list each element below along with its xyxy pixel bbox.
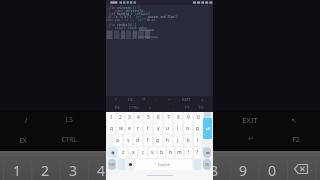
button[interactable]: 7 bbox=[164, 112, 172, 123]
button[interactable] bbox=[204, 135, 211, 146]
button[interactable]: l bbox=[194, 135, 202, 146]
button[interactable]: 4 bbox=[85, 161, 117, 178]
button[interactable]: LS bbox=[45, 115, 93, 125]
button[interactable]: Emoji bbox=[127, 159, 133, 170]
staticText: ? bbox=[196, 149, 199, 156]
button[interactable]: a bbox=[113, 135, 122, 146]
button[interactable]: , bbox=[173, 105, 175, 111]
staticText: a bbox=[116, 137, 119, 144]
staticText: r bbox=[137, 125, 140, 132]
button[interactable]: 3 bbox=[57, 161, 89, 178]
button[interactable]: x bbox=[129, 147, 137, 158]
button[interactable]: Backspace bbox=[204, 112, 211, 123]
staticText: to it bbox=[145, 18, 156, 22]
staticText: ?123 bbox=[109, 163, 115, 167]
button[interactable]: 9 bbox=[184, 112, 192, 123]
button[interactable]: Space bbox=[135, 159, 192, 170]
button[interactable]: CTRL. bbox=[46, 134, 94, 144]
button[interactable]: Enter bbox=[203, 159, 211, 170]
staticText: = bbox=[149, 105, 152, 111]
staticText: inflate() bbox=[135, 12, 151, 16]
button[interactable]: 1 bbox=[1, 161, 33, 178]
button[interactable]: ! bbox=[185, 147, 192, 158]
button[interactable]: q bbox=[108, 123, 115, 134]
button[interactable]: EXIT bbox=[182, 97, 191, 103]
staticText: e bbox=[128, 125, 131, 132]
button[interactable]: h bbox=[164, 135, 172, 146]
staticText: (a != b) { bbox=[114, 15, 134, 19]
button[interactable]: d bbox=[134, 135, 142, 146]
staticText: , params and flow() bbox=[143, 15, 178, 19]
button[interactable]: e bbox=[126, 123, 133, 134]
button[interactable]: 0 bbox=[194, 112, 202, 123]
button[interactable]: CTRL bbox=[129, 105, 139, 111]
button[interactable]: Shift bbox=[108, 147, 117, 158]
button[interactable]: b bbox=[158, 147, 165, 158]
button[interactable]: w bbox=[117, 123, 124, 134]
staticText: ↖ bbox=[270, 117, 318, 125]
button[interactable]: j bbox=[174, 135, 182, 146]
button[interactable]: = bbox=[149, 105, 152, 111]
button[interactable]: g bbox=[154, 135, 162, 146]
button[interactable]: v bbox=[149, 147, 156, 158]
button[interactable]: 8 bbox=[174, 112, 182, 123]
button[interactable]: EXIT bbox=[226, 115, 274, 125]
button[interactable]: ↖ bbox=[270, 116, 318, 126]
staticText: 16 bbox=[107, 18, 111, 22]
button[interactable]: . bbox=[162, 105, 164, 111]
button[interactable]: 5 bbox=[144, 112, 152, 123]
button[interactable]: ? bbox=[194, 147, 201, 158]
button[interactable]: r bbox=[135, 123, 142, 134]
button[interactable]: 6 bbox=[154, 112, 162, 123]
button[interactable]: EX bbox=[115, 105, 120, 111]
button[interactable]: z bbox=[119, 147, 127, 158]
button[interactable]: c bbox=[139, 147, 147, 158]
button[interactable]: ↵ bbox=[227, 134, 275, 144]
button[interactable]: / bbox=[2, 116, 50, 126]
button[interactable]: 4 bbox=[135, 112, 142, 123]
button[interactable]: k bbox=[184, 135, 192, 146]
button[interactable]: 2 bbox=[29, 161, 61, 178]
staticText: t bbox=[147, 125, 149, 132]
button[interactable]: F2 bbox=[272, 135, 320, 145]
button[interactable]: m bbox=[176, 147, 183, 158]
staticText: g bbox=[156, 137, 160, 144]
button[interactable] bbox=[204, 123, 211, 134]
button[interactable]: * bbox=[143, 97, 146, 103]
button[interactable]: ~ bbox=[168, 97, 171, 103]
button[interactable]: u bbox=[164, 123, 172, 134]
button[interactable]: 3 bbox=[126, 112, 133, 123]
button[interactable]: y bbox=[154, 123, 162, 134]
button[interactable]: 0 bbox=[256, 161, 288, 178]
button[interactable]: n bbox=[167, 147, 174, 158]
staticText: / bbox=[115, 97, 117, 103]
button[interactable]: o bbox=[184, 123, 192, 134]
button[interactable]: EX bbox=[0, 135, 47, 145]
button[interactable]: p bbox=[194, 123, 202, 134]
button[interactable]: / bbox=[115, 97, 117, 103]
staticText: render(v) { bbox=[117, 23, 137, 27]
button[interactable]: i bbox=[174, 123, 182, 134]
button[interactable]: LS bbox=[128, 97, 133, 103]
staticText: 1 bbox=[110, 114, 113, 121]
button[interactable]: Enter bbox=[203, 118, 212, 139]
button[interactable]: F2 bbox=[199, 105, 204, 111]
button[interactable]: F1 bbox=[185, 105, 190, 111]
staticText: 0 bbox=[256, 161, 288, 178]
staticText: 19 bbox=[107, 26, 111, 30]
button[interactable]: 8 bbox=[198, 161, 230, 178]
button[interactable]: f bbox=[144, 135, 152, 146]
button[interactable]: - bbox=[156, 97, 158, 103]
button[interactable]: s bbox=[124, 135, 132, 146]
button[interactable]: Backspace bbox=[294, 164, 308, 174]
button[interactable]: 1 bbox=[108, 112, 115, 123]
button[interactable]: 2 bbox=[117, 112, 124, 123]
button[interactable]: 9 bbox=[227, 161, 259, 178]
button[interactable]: + bbox=[201, 97, 204, 103]
button[interactable]: t bbox=[144, 123, 152, 134]
button[interactable]: Symbols bbox=[108, 159, 116, 170]
button[interactable]: Delete bbox=[203, 147, 211, 158]
staticText: val bbox=[110, 12, 117, 16]
